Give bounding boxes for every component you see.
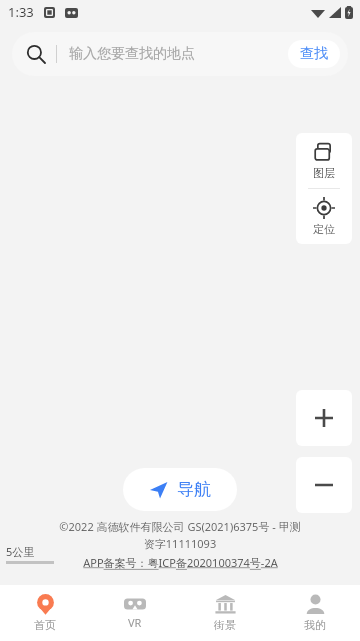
staticText: 图层 [313, 166, 335, 180]
staticText: ©2022 高德软件有限公司 GS(2021)6375号 - 甲测 资字1111… [40, 519, 320, 551]
button[interactable]: 定位 [296, 189, 352, 244]
button[interactable]: 查找 [288, 40, 340, 68]
button[interactable]: 我的 [270, 585, 360, 641]
button[interactable]: Zoom in [296, 390, 352, 446]
staticText: 5公里 [6, 544, 35, 559]
staticText: 查找 [300, 45, 328, 63]
button[interactable]: Zoom out [296, 457, 352, 513]
button[interactable]: 图层 [296, 133, 352, 188]
button[interactable]: 输入您要查找的地点 [12, 32, 348, 76]
staticText: 首页 [34, 618, 56, 632]
staticText: 1:33 [8, 3, 34, 21]
button[interactable]: VR [90, 585, 180, 641]
staticText: 我的 [304, 618, 326, 632]
staticText: 导航 [177, 479, 211, 500]
button[interactable]: 导航 [123, 468, 237, 511]
staticText: APP备案号：粤ICP备2020100374号-2A [83, 555, 278, 570]
staticText: 定位 [313, 222, 335, 236]
button[interactable]: 街景 [180, 585, 270, 641]
staticText: VR [128, 615, 142, 630]
staticText: 街景 [214, 618, 236, 632]
staticText: 输入您要查找的地点 [69, 45, 195, 63]
button[interactable]: APP备案号：粤ICP备2020100374号-2A [83, 555, 278, 570]
button[interactable]: 首页 [0, 585, 90, 641]
